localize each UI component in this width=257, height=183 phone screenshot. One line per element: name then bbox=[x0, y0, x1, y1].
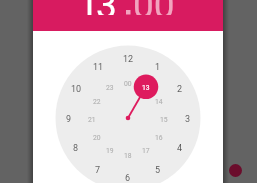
button[interactable]: 11 bbox=[87, 59, 109, 76]
staticText: 8 bbox=[73, 143, 79, 154]
button[interactable]: 7 bbox=[87, 162, 109, 179]
staticText: 11 bbox=[93, 62, 104, 73]
button[interactable]: 00 bbox=[117, 75, 139, 92]
staticText: 17 bbox=[142, 147, 150, 155]
staticText: 12 bbox=[123, 54, 134, 65]
button[interactable]: 19 bbox=[99, 142, 121, 159]
staticText: 14 bbox=[155, 98, 163, 106]
staticText: 7 bbox=[95, 165, 101, 176]
staticText: 3 bbox=[185, 114, 191, 125]
button[interactable]: Add alarm bbox=[229, 164, 242, 177]
button[interactable]: 5 bbox=[147, 162, 169, 179]
button[interactable]: 23 bbox=[99, 79, 121, 96]
button[interactable]: 9 bbox=[58, 111, 80, 128]
button[interactable]: 1 bbox=[33, 0, 223, 31]
button[interactable]: 8 bbox=[65, 140, 87, 157]
staticText: 21 bbox=[88, 116, 96, 124]
staticText: 10 bbox=[71, 84, 82, 95]
staticText: 22 bbox=[93, 98, 101, 106]
staticText: 3 bbox=[96, 0, 117, 15]
staticText: 15 bbox=[160, 116, 168, 124]
staticText: 9 bbox=[66, 114, 72, 125]
staticText: 16 bbox=[155, 134, 163, 142]
button[interactable]: 6 bbox=[117, 170, 139, 183]
staticText: 1 bbox=[155, 62, 161, 73]
button[interactable]: 20 bbox=[86, 129, 108, 146]
staticText: 1 bbox=[78, 0, 99, 15]
button[interactable]: 12 bbox=[117, 51, 139, 68]
button[interactable]: 16 bbox=[148, 129, 170, 146]
button[interactable]: 1 bbox=[147, 59, 169, 76]
button[interactable]: 22 bbox=[86, 93, 108, 110]
staticText: 18 bbox=[124, 152, 132, 160]
staticText: 6 bbox=[125, 173, 131, 183]
button[interactable]: 21 bbox=[81, 111, 103, 128]
staticText: 20 bbox=[93, 134, 101, 142]
button[interactable]: 17 bbox=[135, 142, 157, 159]
button[interactable]: 13 bbox=[135, 79, 157, 96]
staticText: 23 bbox=[106, 84, 114, 92]
staticText: 00 bbox=[133, 0, 175, 15]
button[interactable]: 10 bbox=[65, 81, 87, 98]
button[interactable]: Clock dial bbox=[33, 31, 223, 183]
button[interactable]: 18 bbox=[117, 147, 139, 164]
button[interactable]: 14 bbox=[148, 93, 170, 110]
staticText: 4 bbox=[177, 143, 183, 154]
button[interactable]: 2 bbox=[169, 81, 191, 98]
staticText: 19 bbox=[106, 147, 114, 155]
staticText: 5 bbox=[155, 165, 161, 176]
staticText: 13 bbox=[142, 84, 150, 92]
button[interactable]: 15 bbox=[153, 111, 175, 128]
button[interactable]: 4 bbox=[169, 140, 191, 157]
button[interactable]: 3 bbox=[177, 111, 199, 128]
staticText: 2 bbox=[177, 84, 183, 95]
staticText: 00 bbox=[124, 80, 132, 88]
